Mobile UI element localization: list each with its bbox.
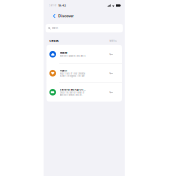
staticText: Health: [60, 69, 67, 72]
button[interactable]: Weather: [46, 45, 122, 64]
staticText: Keep track of your physical activity thr…: [60, 73, 85, 77]
button[interactable]: Health: [46, 64, 122, 83]
button[interactable]: Back: [53, 11, 58, 21]
button[interactable]: Batteries and App Uti…: [46, 83, 122, 102]
staticText: Check the battery levels of Bluetooth de…: [60, 92, 85, 96]
staticText: Discover: [58, 14, 73, 18]
staticText: 19:42: [58, 4, 66, 7]
staticText: Carrier: [48, 4, 56, 7]
staticText: Services: [49, 40, 58, 43]
staticText: Open: [109, 53, 113, 55]
staticText: Weather: [60, 51, 68, 54]
staticText: Batteries and App Uti…: [60, 88, 86, 91]
staticText: Search: [52, 27, 58, 29]
staticText: Open: [109, 91, 113, 93]
button[interactable]: Search: [46, 24, 123, 32]
button[interactable]: More: [109, 40, 117, 42]
staticText: Open: [109, 72, 113, 74]
staticText: More: [109, 40, 114, 42]
staticText: Real-time updates and alerts: [60, 55, 86, 57]
